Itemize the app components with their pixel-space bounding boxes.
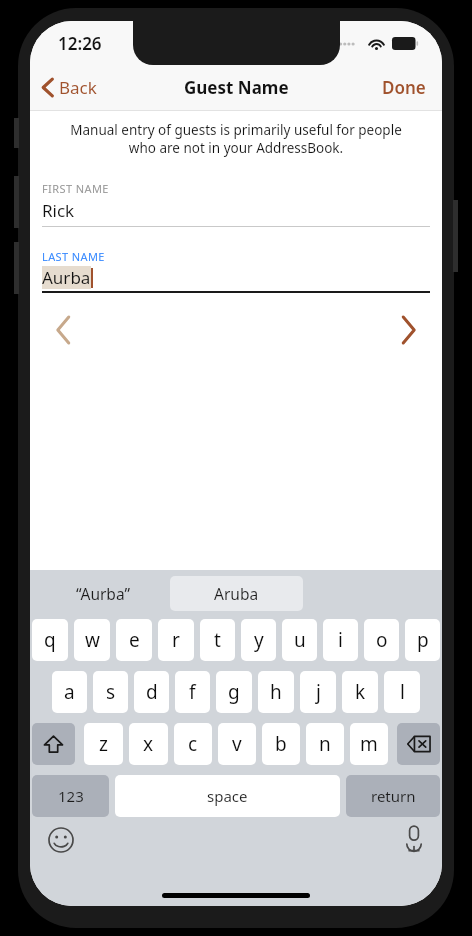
staticText: y <box>254 627 264 653</box>
button[interactable]: b <box>262 723 300 765</box>
staticText: p <box>417 627 429 653</box>
button[interactable]: h <box>258 671 294 713</box>
button[interactable]: z <box>84 723 123 765</box>
button[interactable]: i <box>323 619 358 661</box>
staticText: n <box>319 731 331 757</box>
button[interactable]: m <box>350 723 388 765</box>
button[interactable]: j <box>300 671 336 713</box>
button[interactable]: Backspace <box>397 723 440 765</box>
staticText: “Aurba” <box>76 583 131 604</box>
staticText: l <box>400 679 405 705</box>
button[interactable]: k <box>342 671 378 713</box>
staticText: h <box>270 679 282 705</box>
button[interactable]: g <box>216 671 252 713</box>
staticText: w <box>85 627 100 653</box>
button[interactable]: FIRST NAME <box>42 181 430 227</box>
button[interactable]: t <box>200 619 235 661</box>
staticText: m <box>360 731 378 757</box>
staticText: 123 <box>58 786 84 806</box>
button[interactable]: return <box>346 775 440 817</box>
staticText: return <box>371 786 416 806</box>
button[interactable]: “Aurba” <box>36 570 170 617</box>
staticText: b <box>275 731 287 757</box>
button[interactable]: Dictation <box>400 821 428 856</box>
button[interactable]: LAST NAME <box>42 249 430 293</box>
staticText: o <box>376 627 388 653</box>
staticText: a <box>64 679 75 705</box>
staticText: Aruba <box>214 583 259 604</box>
staticText: i <box>338 627 343 653</box>
staticText: Rick <box>42 199 75 222</box>
staticText: g <box>228 679 240 705</box>
staticText: c <box>188 731 198 757</box>
button[interactable]: w <box>74 619 110 661</box>
button[interactable]: u <box>282 619 317 661</box>
button[interactable]: o <box>364 619 399 661</box>
button[interactable]: d <box>134 671 169 713</box>
staticText: space <box>207 786 248 806</box>
staticText: LAST NAME <box>42 249 105 264</box>
button[interactable]: x <box>129 723 168 765</box>
staticText: Manual entry of guests is primarily usef… <box>44 121 428 157</box>
staticText: Back <box>59 76 97 99</box>
button[interactable]: space <box>115 775 340 817</box>
button[interactable]: Done <box>366 68 442 107</box>
button[interactable]: n <box>306 723 344 765</box>
staticText: Guest Name <box>184 76 289 99</box>
staticText: z <box>99 731 108 757</box>
staticText: x <box>143 731 154 757</box>
button[interactable]: v <box>218 723 256 765</box>
button[interactable]: Aruba <box>170 576 303 611</box>
staticText: 12:26 <box>58 32 102 55</box>
staticText: k <box>355 679 366 705</box>
button[interactable]: r <box>158 619 194 661</box>
button[interactable]: s <box>93 671 128 713</box>
staticText: s <box>106 679 116 705</box>
button[interactable]: Emoji <box>44 823 78 857</box>
staticText: Aurba <box>42 266 91 289</box>
button[interactable]: p <box>405 619 440 661</box>
button[interactable]: Shift <box>32 723 75 765</box>
button[interactable]: a <box>52 671 87 713</box>
staticText: u <box>294 627 306 653</box>
staticText: v <box>232 731 242 757</box>
button[interactable]: Back <box>30 70 109 105</box>
staticText: e <box>129 627 140 653</box>
button[interactable]: e <box>116 619 152 661</box>
staticText: j <box>316 679 321 705</box>
button[interactable]: f <box>175 671 210 713</box>
button[interactable]: y <box>241 619 276 661</box>
button[interactable]: l <box>384 671 420 713</box>
staticText: FIRST NAME <box>42 181 109 196</box>
staticText: f <box>189 679 196 705</box>
button[interactable]: 123 <box>32 775 109 817</box>
staticText: d <box>146 679 158 705</box>
staticText: Done <box>382 76 426 99</box>
button[interactable]: Previous field <box>46 307 81 353</box>
button[interactable]: q <box>32 619 68 661</box>
staticText: r <box>172 627 180 653</box>
button[interactable]: c <box>174 723 212 765</box>
button[interactable]: Next field <box>391 307 426 353</box>
staticText: q <box>44 627 56 653</box>
staticText: t <box>214 627 221 653</box>
